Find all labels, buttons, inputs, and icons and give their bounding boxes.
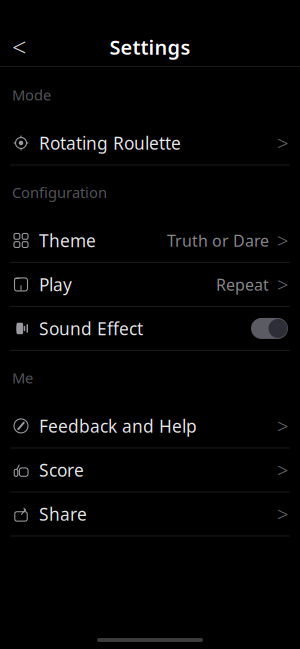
staticText: Sound Effect xyxy=(39,317,143,340)
staticText: Play xyxy=(39,273,72,296)
button[interactable]: Theme xyxy=(0,219,300,262)
button[interactable]: Sound Effect toggle xyxy=(0,307,300,350)
staticText: Configuration xyxy=(12,182,107,202)
staticText: Share xyxy=(39,502,87,525)
button[interactable]: Rotating Roulette xyxy=(0,121,300,164)
staticText: Rotating Roulette xyxy=(39,131,181,154)
staticText: Repeat xyxy=(216,274,269,295)
staticText: > xyxy=(277,227,288,254)
staticText: Me xyxy=(12,368,33,387)
staticText: Score xyxy=(39,458,84,481)
staticText: Theme xyxy=(39,229,96,252)
button[interactable]: Back xyxy=(0,28,38,66)
staticText: Mode xyxy=(12,85,51,104)
staticText: > xyxy=(277,413,288,439)
button[interactable]: Score xyxy=(0,448,300,491)
staticText: > xyxy=(277,457,288,483)
staticText: > xyxy=(277,130,288,156)
button[interactable]: Share xyxy=(0,492,300,535)
button[interactable]: Play xyxy=(0,263,300,306)
staticText: Truth or Dare xyxy=(167,230,269,251)
staticText: Feedback and Help xyxy=(39,414,197,437)
staticText: < xyxy=(12,30,26,64)
button[interactable]: Feedback and Help xyxy=(0,404,300,447)
staticText: Settings xyxy=(109,34,190,60)
staticText: > xyxy=(277,501,288,527)
staticText: > xyxy=(277,271,288,298)
